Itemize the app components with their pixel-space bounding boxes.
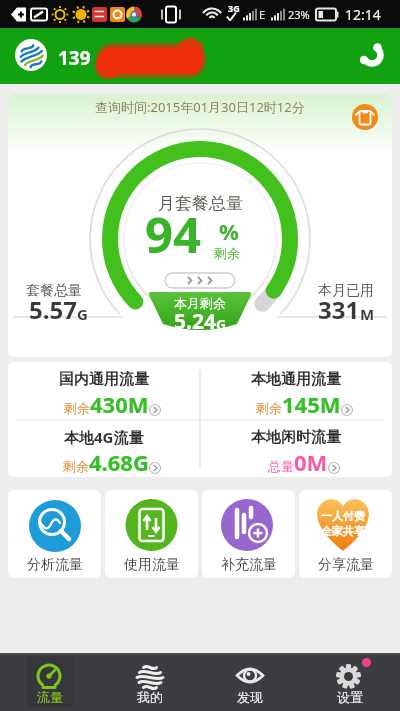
staticText: G: [77, 304, 88, 324]
staticText: 5.57: [29, 293, 77, 326]
staticText: 本地闲时流量: [251, 428, 341, 447]
button[interactable]: 流量: [0, 653, 100, 711]
button[interactable]: 本地通用流量: [200, 362, 392, 419]
staticText: 145M: [282, 389, 341, 419]
staticText: 流量: [37, 689, 63, 705]
staticText: 12:14: [345, 5, 381, 24]
staticText: 本月剩余: [174, 295, 226, 311]
staticText: 补充流量: [221, 556, 277, 574]
staticText: 剩余: [63, 458, 89, 474]
button[interactable]: 我的: [100, 653, 200, 711]
staticText: 23%: [288, 7, 310, 22]
staticText: 本地4G流量: [64, 427, 144, 447]
staticText: 本月已用: [318, 282, 374, 300]
button[interactable]: 设置: [300, 653, 400, 711]
button[interactable]: 发现: [200, 653, 300, 711]
staticText: %: [219, 216, 239, 246]
button[interactable]: 查询时间:2015年01月30日12时12分: [8, 94, 392, 357]
staticText: 331: [318, 293, 360, 326]
staticText: 总量: [268, 458, 294, 474]
staticText: 5.24: [174, 307, 216, 336]
staticText: 0M: [294, 447, 328, 477]
staticText: 套餐总量: [26, 282, 82, 300]
staticText: 分享流量: [318, 556, 374, 574]
button[interactable]: 分析流量: [8, 490, 101, 578]
staticText: 3G: [228, 2, 240, 14]
staticText: 430M: [90, 389, 149, 419]
staticText: 查询时间:2015年01月30日12时12分: [95, 98, 305, 116]
staticText: 剩余: [256, 400, 282, 416]
button[interactable]: 补充流量: [202, 490, 295, 578]
staticText: E: [259, 7, 266, 22]
staticText: 139: [58, 45, 91, 71]
staticText: 剩余: [64, 400, 90, 416]
button[interactable]: 国内通用流量: [8, 362, 200, 419]
staticText: 我的: [137, 689, 163, 705]
staticText: 分析流量: [27, 556, 83, 574]
staticText: 月套餐总量: [158, 193, 243, 214]
staticText: 4.68G: [89, 447, 149, 477]
button[interactable]: [352, 35, 392, 75]
staticText: 发现: [237, 689, 263, 705]
staticText: M: [360, 304, 375, 324]
button[interactable]: 分享流量: [299, 490, 392, 578]
button[interactable]: 使用流量: [105, 490, 198, 578]
staticText: 国内通用流量: [59, 370, 149, 389]
staticText: 剩余: [214, 245, 240, 261]
button[interactable]: [350, 102, 380, 132]
staticText: G: [216, 315, 227, 334]
staticText: 94: [145, 201, 202, 268]
staticText: 本地通用流量: [251, 370, 341, 389]
button[interactable]: 本地闲时流量: [200, 420, 392, 477]
staticText: 全家共享: [321, 524, 365, 538]
staticText: 设置: [337, 689, 363, 705]
button[interactable]: 本地4G流量: [8, 420, 200, 477]
staticText: 一人付费: [321, 509, 365, 523]
staticText: 使用流量: [124, 556, 180, 574]
